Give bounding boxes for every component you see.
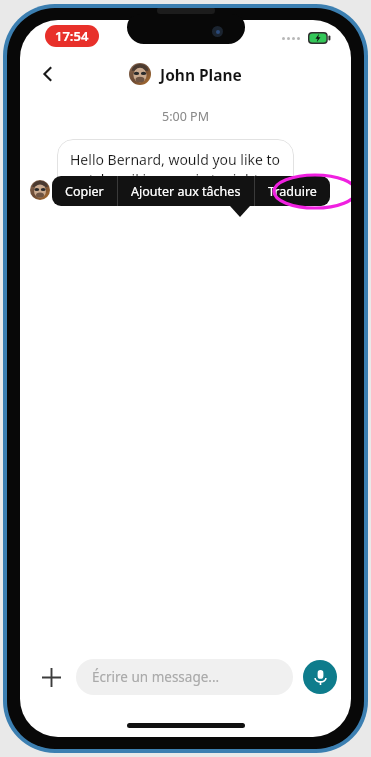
staticText: Écrire un message... (92, 668, 220, 686)
button[interactable]: Back (28, 54, 68, 94)
staticText: 5:00 PM (20, 108, 351, 125)
button[interactable]: Écrire un message... (76, 659, 293, 695)
button[interactable]: Voice message (303, 660, 337, 694)
button[interactable]: Ajouter aux tâches (118, 177, 254, 206)
staticText: Copier (65, 183, 104, 200)
staticText: Ajouter aux tâches (131, 183, 241, 200)
staticText: Traduire (268, 183, 317, 200)
button[interactable]: Hello Bernard, would you like to watch a… (57, 139, 294, 200)
staticText: Hello Bernard, would you like to watch a… (70, 150, 281, 189)
staticText: 17:54 (55, 27, 89, 45)
button[interactable]: Copier (52, 177, 117, 206)
button[interactable]: Traduire (255, 177, 330, 206)
button[interactable]: Add attachment (34, 660, 68, 694)
staticText: John Plane (160, 64, 242, 85)
